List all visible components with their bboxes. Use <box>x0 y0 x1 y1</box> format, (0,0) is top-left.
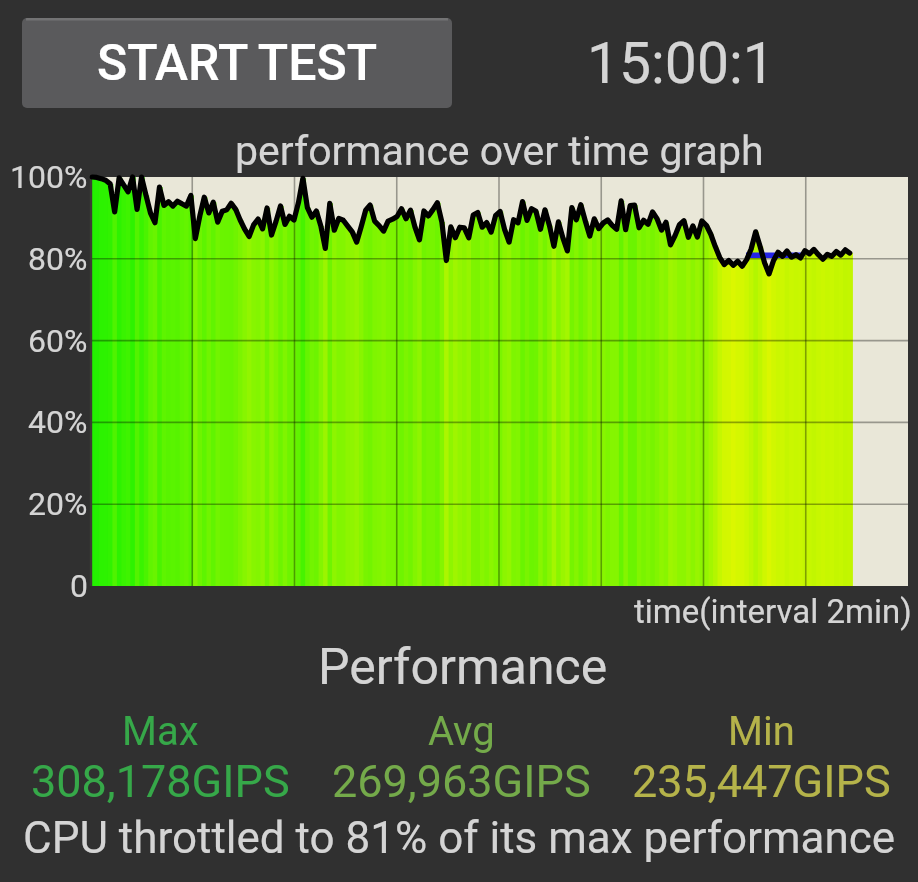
staticText: Max <box>122 708 199 755</box>
staticText: Performance <box>318 638 608 696</box>
staticText: 269,963GIPS <box>332 755 591 808</box>
staticText: 60% <box>28 322 88 360</box>
staticText: 0 <box>70 567 88 605</box>
staticText: 308,178GIPS <box>31 755 290 808</box>
staticText: time(interval 2min) <box>634 592 912 631</box>
staticText: Min <box>728 708 795 755</box>
staticText: performance over time graph <box>235 127 764 175</box>
staticText: 40% <box>28 403 88 441</box>
staticText: CPU throttled to 81% of its max performa… <box>23 812 896 864</box>
staticText: 80% <box>28 240 88 278</box>
staticText: 100% <box>10 158 88 196</box>
staticText: START TEST <box>97 34 378 93</box>
staticText: 20% <box>28 485 88 523</box>
staticText: 15:00:1 <box>587 30 775 97</box>
staticText: 235,447GIPS <box>632 755 891 808</box>
button[interactable]: START TEST <box>22 18 452 108</box>
staticText: Avg <box>428 708 495 755</box>
